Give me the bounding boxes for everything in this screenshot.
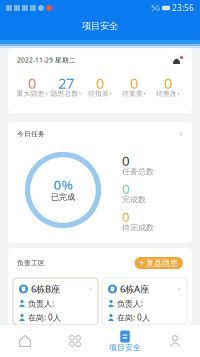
button[interactable]: 0	[117, 75, 151, 98]
button[interactable]: +	[134, 257, 183, 269]
button[interactable]: 项目安全	[100, 325, 150, 357]
staticText: 6栋B座	[31, 283, 60, 295]
staticText: 项目安全	[82, 20, 118, 32]
button[interactable]: 6栋A座	[102, 278, 187, 325]
staticText: 23:56	[172, 3, 194, 13]
staticText: +	[139, 258, 144, 268]
staticText: 待完成数	[122, 223, 154, 232]
staticText: 负责人:	[28, 298, 54, 309]
staticText: 复盘隐患	[146, 258, 178, 268]
button[interactable]: 6栋B座	[13, 278, 98, 325]
staticText: 0	[122, 180, 130, 197]
staticText: 待复查	[122, 89, 143, 98]
staticText: 在岗: 0人	[28, 312, 61, 323]
staticText: 负责人:	[117, 298, 143, 309]
staticText: 任务总数	[122, 167, 154, 176]
staticText: 27	[58, 73, 74, 93]
staticText: 0	[96, 73, 104, 93]
button[interactable]: 27	[49, 75, 83, 98]
staticText: 重大隐患	[17, 89, 45, 98]
staticText: 5G	[151, 4, 160, 12]
staticText: 负责工区	[17, 259, 45, 267]
button[interactable]: 今日任务	[8, 122, 192, 146]
staticText: 2022-11-29 星期二	[17, 56, 76, 64]
staticText: 已完成	[51, 192, 75, 202]
button[interactable]: 应用	[50, 325, 100, 357]
staticText: 项目安全	[109, 343, 141, 352]
button[interactable]: 我的	[150, 325, 200, 357]
button[interactable]: 0	[151, 75, 185, 98]
staticText: 待指派	[88, 89, 109, 98]
staticText: 0	[122, 208, 130, 225]
button[interactable]: 首页	[0, 325, 50, 357]
staticText: 0	[122, 152, 130, 169]
staticText: 0	[130, 73, 138, 93]
staticText: 在岗: 0人	[117, 312, 150, 323]
staticText: 0	[164, 73, 172, 93]
staticText: 0%	[53, 176, 72, 193]
button[interactable]: 0	[83, 75, 117, 98]
staticText: 待整改	[156, 89, 177, 98]
button[interactable]: 通知	[173, 56, 183, 64]
staticText: 隐患总数	[50, 89, 78, 98]
staticText: 0	[28, 73, 36, 93]
staticText: 今日任务	[17, 130, 45, 138]
staticText: 完成数	[122, 195, 146, 204]
staticText: 6栋A座	[120, 283, 149, 295]
button[interactable]: 0	[15, 75, 49, 98]
